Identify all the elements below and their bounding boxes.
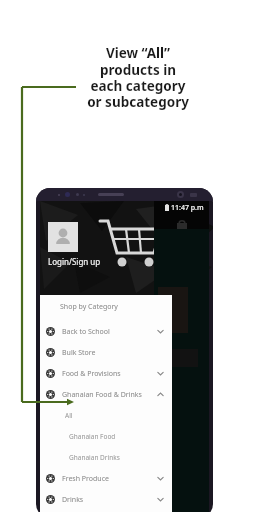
staticText: Food & Provisions	[62, 369, 157, 379]
staticText: Ghanaian Drinks	[69, 453, 120, 462]
staticText: Shop by Category	[60, 302, 118, 312]
button[interactable]: Ghanaian Food	[40, 426, 172, 447]
button[interactable]: Ghanaian Food & Drinks	[40, 384, 172, 405]
staticText: View “All” products in each category or …	[54, 44, 222, 111]
button[interactable]: Food & Provisions	[40, 363, 172, 384]
button[interactable]: Drinks	[40, 489, 172, 510]
button[interactable]: All	[40, 405, 172, 426]
staticText: Fresh Produce	[62, 474, 157, 484]
button[interactable]: Ghanaian Drinks	[40, 447, 172, 468]
staticText: All	[65, 411, 73, 420]
staticText: Bulk Store	[62, 348, 164, 358]
staticText: Ghanaian Food	[69, 432, 116, 441]
staticText: Ghanaian Food & Drinks	[62, 390, 157, 400]
staticText: 11:47 p.m	[171, 203, 204, 213]
staticText: Back to School	[62, 327, 157, 337]
button[interactable]: Bulk Store	[40, 342, 172, 363]
button[interactable]: Back to School	[40, 321, 172, 342]
button[interactable]: Fresh Produce	[40, 468, 172, 489]
staticText: Drinks	[62, 495, 157, 505]
staticText: Login/Sign up	[48, 256, 101, 267]
